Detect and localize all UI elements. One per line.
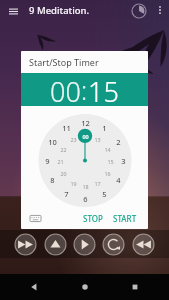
staticText: 16 (104, 170, 111, 177)
staticText: 11 (62, 123, 71, 133)
staticText: 2 (116, 137, 121, 147)
staticText: 15 (88, 73, 119, 106)
staticText: 00 (50, 73, 81, 106)
button[interactable]: More options (153, 3, 167, 17)
staticText: 12 (81, 118, 90, 128)
staticText: 00 (82, 133, 89, 140)
staticText: 20 (60, 170, 67, 177)
staticText: 5 (102, 189, 107, 199)
staticText: 9 Meditation. (29, 4, 90, 17)
button[interactable]: Home (77, 279, 93, 295)
button[interactable]: Stop (44, 233, 67, 256)
staticText: START (113, 213, 137, 224)
staticText: 9 (45, 156, 50, 166)
staticText: 21 (57, 158, 64, 165)
staticText: 1 (102, 123, 107, 133)
staticText: 22 (60, 146, 67, 153)
staticText: 17 (94, 180, 101, 187)
button[interactable]: Repeat (102, 233, 125, 256)
button[interactable]: STOP (78, 210, 108, 227)
staticText: 23 (70, 136, 77, 143)
staticText: 15 (107, 158, 114, 165)
staticText: 19 (70, 180, 77, 187)
staticText: 14 (104, 146, 111, 153)
staticText: 7 (64, 189, 69, 199)
staticText: : (81, 73, 88, 106)
button[interactable]: Sleep timer (130, 2, 148, 20)
staticText: 18 (82, 183, 89, 190)
button[interactable]: Switch to keyboard input (30, 213, 41, 224)
button[interactable]: Rewind (14, 233, 37, 256)
staticText: STOP (83, 213, 103, 224)
button[interactable]: START (108, 210, 142, 227)
button[interactable]: Play (73, 233, 96, 256)
staticText: Start/Stop Timer (29, 56, 99, 68)
button[interactable]: Back (26, 279, 42, 295)
button[interactable]: Open navigation menu (6, 4, 21, 19)
staticText: 6 (83, 194, 88, 204)
button[interactable]: Recent apps (127, 279, 143, 295)
button[interactable]: Fast forward (132, 233, 155, 256)
button[interactable]: Clock hour picker (38, 114, 132, 207)
staticText: 10 (48, 137, 57, 147)
staticText: 8 (50, 175, 55, 185)
staticText: 3 (121, 156, 126, 166)
staticText: 13 (94, 136, 101, 143)
staticText: 4 (116, 175, 121, 185)
